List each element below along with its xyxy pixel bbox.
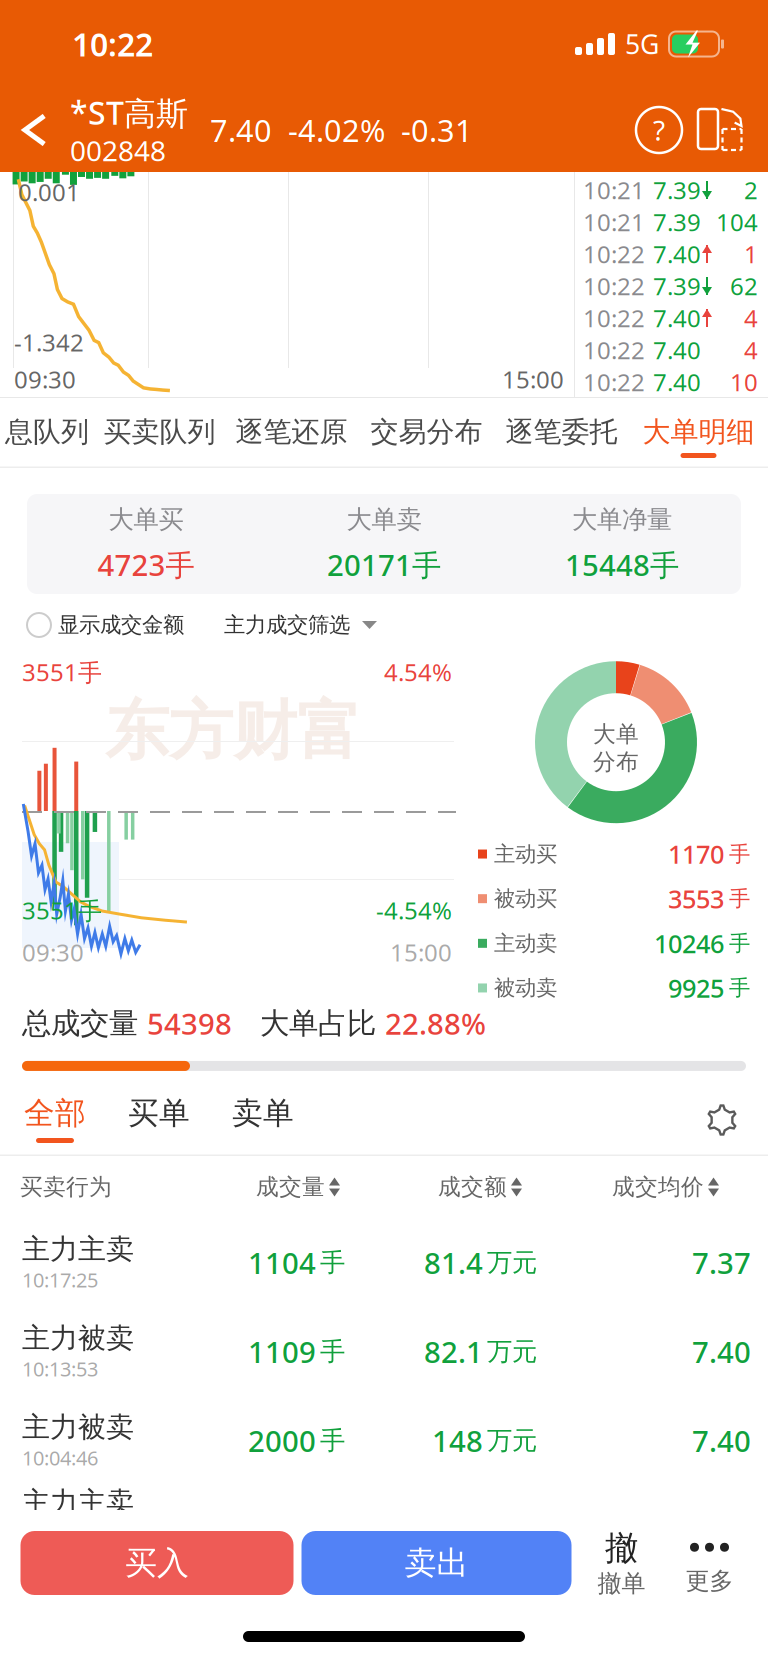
staticText: 主力被卖 — [22, 1410, 134, 1444]
staticText: 4.54% — [384, 656, 452, 688]
staticText: 62 — [730, 270, 758, 302]
staticText: 10:13:53 — [22, 1355, 98, 1382]
staticText: 1104 — [248, 1243, 316, 1282]
staticText: 7.40 — [653, 302, 701, 334]
staticText: 逐笔委托 — [505, 415, 617, 449]
staticText: 10:22 — [583, 238, 645, 270]
button[interactable]: 全部 — [24, 1084, 86, 1156]
staticText: 10:04:46 — [22, 1444, 98, 1471]
staticText: 更多 — [685, 1566, 733, 1596]
staticText: 成交量 — [256, 1173, 325, 1201]
button[interactable]: 撤 — [579, 1528, 663, 1598]
staticText: 成交均价 — [612, 1173, 704, 1201]
staticText: 2 — [744, 174, 758, 206]
staticText: 10:22 — [583, 302, 645, 334]
staticText: 逐笔还原 — [235, 415, 347, 449]
staticText: 大单占比 — [260, 1005, 385, 1041]
staticText: 1 — [744, 238, 758, 270]
staticText: 4 — [744, 302, 758, 334]
button[interactable]: Help — [627, 88, 691, 172]
staticText: 主力主卖 — [22, 1485, 134, 1519]
staticText: 22.88% — [385, 1004, 486, 1043]
staticText: 大单净量 — [572, 504, 672, 535]
staticText: 10:22 — [72, 23, 153, 65]
staticText: ? — [653, 111, 665, 149]
button[interactable]: 成交额 — [340, 1156, 522, 1218]
button[interactable]: Compare — [691, 88, 751, 172]
staticText: -1.342 — [14, 326, 84, 358]
staticText: 10:21 — [583, 174, 645, 206]
staticText: 7.40 -4.02% -0.31 — [210, 110, 473, 150]
staticText: 显示成交金额 — [58, 612, 184, 638]
staticText: -4.54% — [376, 894, 452, 926]
staticText: 手 — [320, 1247, 345, 1278]
staticText: 大单买 — [108, 504, 183, 535]
button[interactable]: 逐笔委托 — [494, 398, 628, 468]
button[interactable]: 主力被卖 — [0, 1396, 768, 1485]
staticText: 撤 — [605, 1528, 638, 1569]
staticText: 万元 — [487, 1425, 537, 1456]
button[interactable]: 息队列 — [0, 398, 94, 468]
staticText: 148 — [432, 1421, 483, 1460]
staticText: 撤单 — [597, 1569, 645, 1598]
staticText: 104 — [716, 206, 758, 238]
button[interactable]: 成交量 — [200, 1156, 340, 1218]
staticText: 5G — [625, 26, 659, 62]
staticText: 手 — [729, 841, 750, 867]
staticText: 买入 — [125, 1543, 189, 1583]
staticText: 002848 — [70, 132, 166, 169]
staticText: 交易分布 — [370, 415, 482, 449]
button[interactable]: 买卖队列 — [94, 398, 224, 468]
staticText: 手 — [320, 1425, 345, 1456]
button[interactable]: Back — [0, 88, 70, 172]
staticText: 3551手 — [22, 656, 102, 688]
button[interactable]: 卖出 — [301, 1531, 571, 1595]
staticText: 82.1 — [424, 1332, 483, 1371]
button[interactable]: Settings — [694, 1084, 750, 1156]
staticText: 主力成交筛选 — [224, 612, 350, 638]
button[interactable]: 买单 — [128, 1084, 190, 1156]
staticText: 10:22 — [583, 366, 645, 398]
button[interactable]: 成交均价 — [522, 1156, 719, 1218]
staticText: 09:30 — [22, 936, 84, 968]
staticText: 被动买 — [494, 886, 557, 912]
staticText: 15448手 — [565, 545, 679, 584]
staticText: 买单 — [128, 1094, 190, 1132]
button[interactable]: 大单明细 — [628, 398, 768, 468]
staticText: 手 — [729, 975, 750, 1001]
button[interactable]: 显示成交金额 — [27, 612, 184, 638]
staticText: 大单 — [593, 720, 639, 748]
staticText: 10 — [730, 366, 758, 398]
staticText: 0.001 — [18, 176, 80, 208]
staticText: 万元 — [487, 1247, 537, 1278]
staticText: 15:00 — [502, 363, 564, 395]
staticText: 7.40 — [692, 1421, 751, 1460]
button[interactable]: 买入 — [20, 1531, 293, 1595]
button[interactable]: 卖单 — [232, 1084, 294, 1156]
staticText: 3553 — [668, 882, 724, 915]
staticText: 主力被卖 — [22, 1321, 134, 1355]
staticText: 7.40 — [653, 334, 701, 366]
staticText: 81.4 — [424, 1243, 483, 1282]
button[interactable]: 更多 — [667, 1530, 751, 1596]
button[interactable]: 主力成交筛选 — [224, 612, 377, 638]
staticText: 主动卖 — [494, 930, 557, 956]
staticText: 东方财富 — [105, 692, 361, 771]
staticText: 卖单 — [232, 1094, 294, 1132]
button[interactable]: 主力被卖 — [0, 1307, 768, 1396]
staticText: 4 — [744, 334, 758, 366]
staticText: 7.39 — [653, 206, 701, 238]
staticText: 15:00 — [390, 936, 452, 968]
staticText: 7.37 — [692, 1243, 751, 1282]
staticText: 成交额 — [438, 1173, 507, 1201]
staticText: 1170 — [668, 837, 724, 871]
button[interactable]: 交易分布 — [358, 398, 494, 468]
staticText: 54398 — [147, 1004, 232, 1043]
staticText: 分布 — [593, 748, 639, 776]
staticText: 10:21 — [583, 206, 645, 238]
staticText: 手 — [729, 886, 750, 912]
staticText: 09:30 — [14, 363, 76, 395]
button[interactable]: 逐笔还原 — [224, 398, 358, 468]
staticText: 7.39 — [653, 270, 701, 302]
button[interactable]: 主力主卖 — [0, 1218, 768, 1307]
